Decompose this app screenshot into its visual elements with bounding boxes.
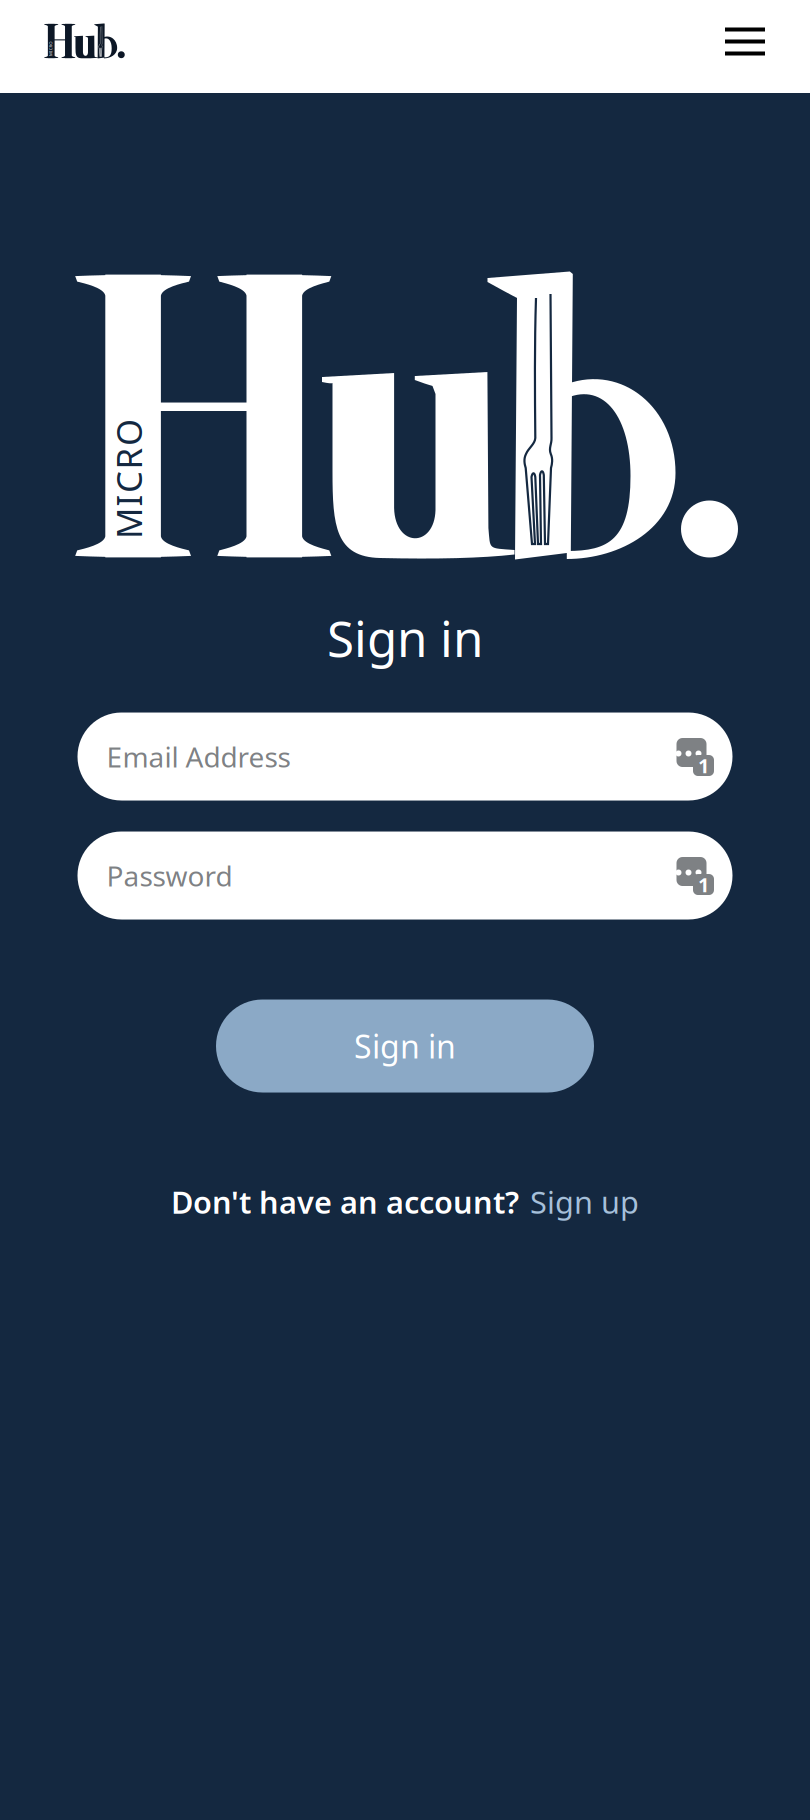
- staticText: Email Address: [106, 738, 290, 775]
- button[interactable]: Sign up: [530, 1181, 639, 1222]
- staticText: Sign in: [327, 605, 483, 670]
- button[interactable]: Email Address: [77, 712, 732, 800]
- staticText: 1: [698, 752, 709, 779]
- staticText: MICRO: [68, 456, 188, 502]
- staticText: Password: [106, 857, 232, 894]
- button[interactable]: Sign in: [216, 999, 594, 1092]
- staticText: Sign in: [354, 1025, 456, 1067]
- staticText: Don't have an account?: [171, 1181, 519, 1222]
- staticText: Sign up: [530, 1181, 639, 1222]
- button[interactable]: Menu: [725, 27, 765, 55]
- button[interactable]: Password: [77, 831, 732, 919]
- staticText: 1: [698, 871, 709, 898]
